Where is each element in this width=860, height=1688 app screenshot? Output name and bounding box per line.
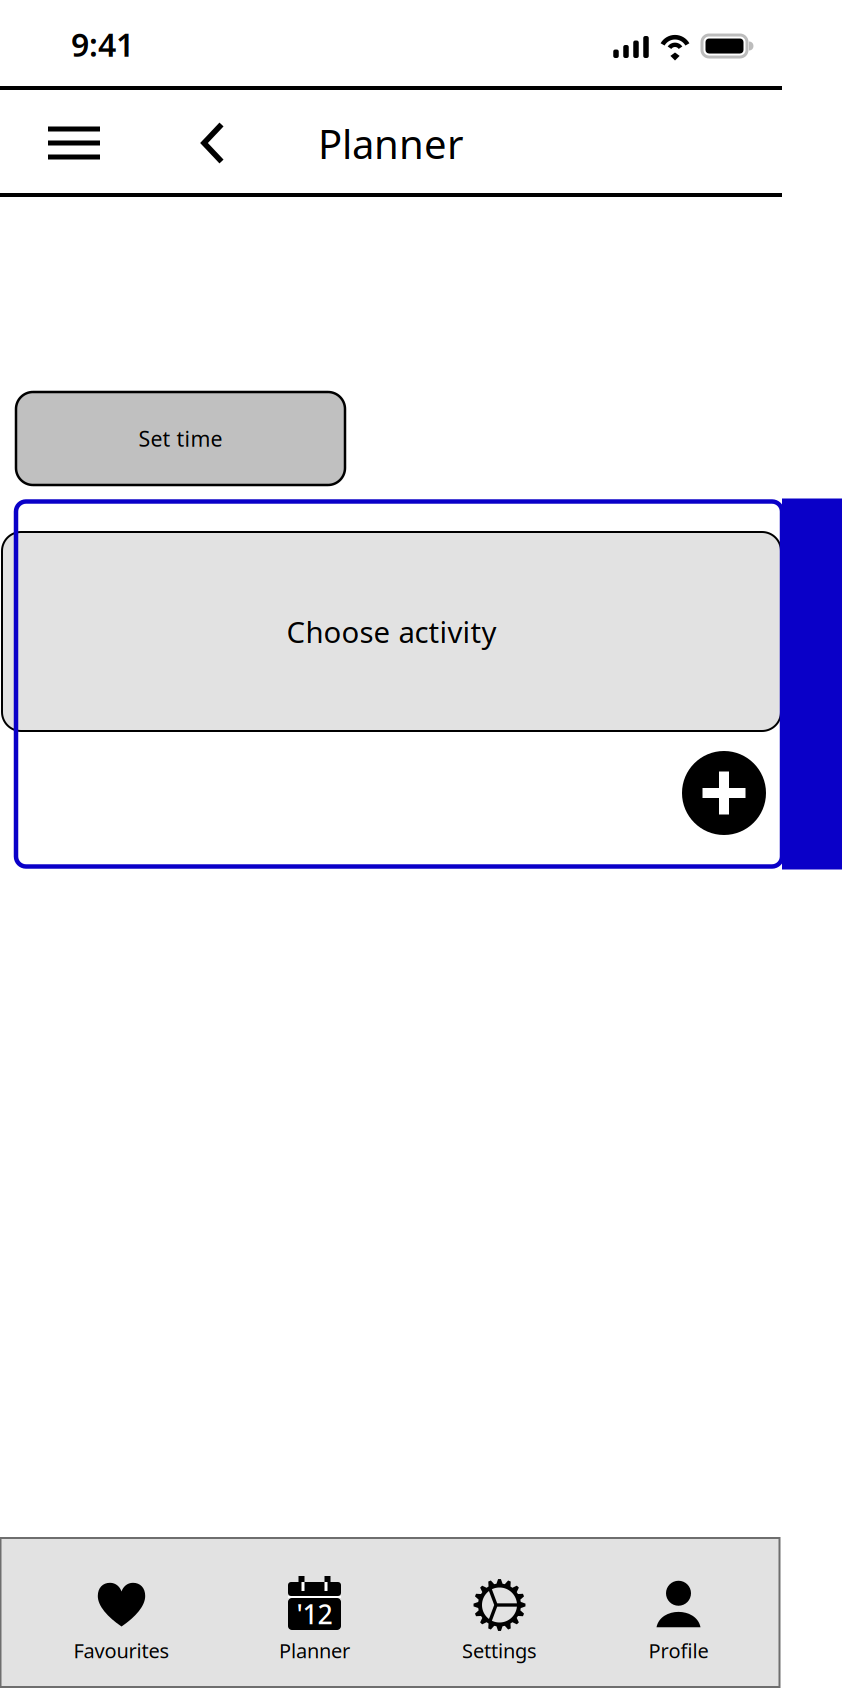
button[interactable]: Favourites [41, 1572, 201, 1667]
button[interactable]: Choose activity [2, 532, 781, 731]
staticText: Choose activity [286, 612, 496, 651]
button[interactable]: Settings [419, 1572, 579, 1667]
button[interactable]: Set time [16, 392, 345, 485]
button[interactable]: Add activity [682, 751, 766, 835]
staticText: Planner [318, 117, 464, 170]
staticText: Favourites [73, 1637, 169, 1664]
staticText: Planner [279, 1637, 350, 1664]
button[interactable]: Profile [598, 1572, 758, 1667]
staticText: '12 [296, 1596, 332, 1632]
button[interactable]: Menu [38, 112, 110, 174]
staticText: Settings [462, 1637, 537, 1664]
button[interactable]: '12 [234, 1572, 394, 1667]
staticText: Set time [138, 424, 222, 453]
button[interactable]: Back [185, 112, 241, 174]
staticText: Profile [648, 1637, 708, 1664]
staticText: 9:41 [71, 23, 134, 65]
